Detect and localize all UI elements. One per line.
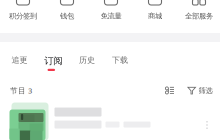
button[interactable]: 历史 xyxy=(75,55,99,71)
button[interactable]: 免流量 xyxy=(89,0,133,22)
staticText: 历史 xyxy=(79,55,95,65)
staticText: 免流量 xyxy=(100,11,121,21)
staticText: 追更 xyxy=(11,55,27,65)
staticText: 全部服务 xyxy=(185,11,213,21)
button[interactable]: 全部服务 xyxy=(177,0,220,22)
button[interactable]: 排序 xyxy=(163,85,176,96)
button[interactable]: 追更 xyxy=(7,55,31,71)
button[interactable]: 订阅 xyxy=(40,55,66,71)
staticText: 钱包 xyxy=(60,11,74,21)
staticText: 订阅 xyxy=(44,55,62,67)
staticText: 节目 3 xyxy=(10,85,32,96)
button[interactable]: 更多 xyxy=(200,115,214,135)
button[interactable]: 下载 xyxy=(108,55,132,71)
staticText: 筛选 xyxy=(198,86,212,95)
button[interactable]: 积分签到 xyxy=(1,0,45,22)
button[interactable]: 钱包 xyxy=(45,0,89,22)
staticText: 下载 xyxy=(112,55,128,65)
staticText: 商城 xyxy=(148,11,162,21)
button[interactable]: 商城 xyxy=(133,0,177,22)
staticText: 积分签到 xyxy=(9,11,37,21)
button[interactable]: 筛选 xyxy=(186,84,214,97)
